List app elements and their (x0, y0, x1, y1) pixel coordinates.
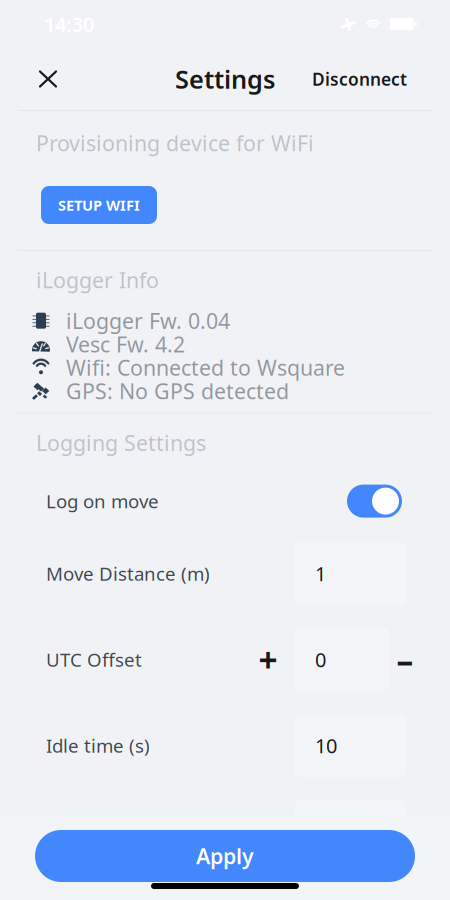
staticText: 1 (315, 560, 326, 587)
button[interactable]: Log on move (347, 485, 402, 518)
button[interactable]: Disconnect (306, 54, 413, 103)
button[interactable]: Apply (35, 830, 415, 882)
staticText: Log rate (Hz) (46, 819, 158, 844)
button[interactable]: Close (26, 57, 70, 101)
staticText: Settings (175, 62, 275, 96)
staticText: 5 (315, 818, 326, 845)
button[interactable]: 10 (294, 714, 407, 777)
button[interactable]: 1 (294, 542, 407, 605)
staticText: Apply (196, 842, 254, 870)
staticText: Wifi: Connected to Wsquare (66, 353, 345, 382)
staticText: Provisioning device for WiFi (36, 129, 314, 157)
button[interactable]: Increase (250, 642, 286, 678)
staticText: Move Distance (m) (46, 561, 210, 586)
staticText: iLogger Fw. 0.04 (66, 306, 230, 335)
staticText: 0 (315, 646, 326, 673)
button[interactable]: 5 (294, 800, 407, 863)
staticText: Logging Settings (36, 428, 206, 457)
staticText: Idle time (s) (46, 733, 150, 758)
staticText: 14:30 (44, 11, 94, 37)
button[interactable]: Decrease (390, 642, 420, 678)
button[interactable]: SETUP WIFI (41, 186, 157, 224)
staticText: Vesc Fw. 4.2 (66, 330, 185, 358)
button[interactable]: 0 (294, 628, 390, 691)
staticText: Disconnect (312, 67, 407, 90)
staticText: Log on move (46, 489, 159, 513)
staticText: + (258, 637, 277, 682)
staticText: – (396, 637, 413, 682)
staticText: SETUP WIFI (58, 195, 140, 215)
staticText: 10 (315, 732, 337, 759)
staticText: GPS: No GPS detected (66, 377, 289, 405)
staticText: iLogger Info (36, 266, 159, 294)
staticText: UTC Offset (46, 647, 142, 672)
